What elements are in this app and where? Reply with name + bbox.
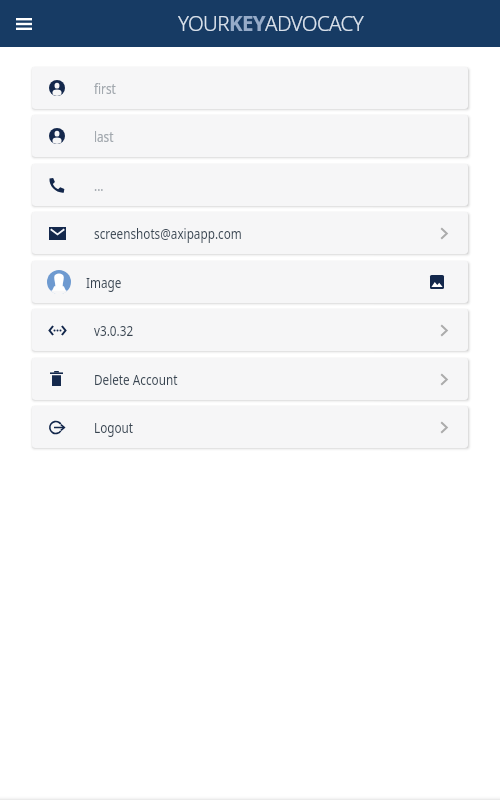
staticText: Image [86,272,122,292]
button[interactable]: Image [32,261,468,303]
staticText: Logout [94,417,134,437]
staticText: ... [94,175,104,195]
button[interactable]: Open navigation menu [8,8,40,40]
button[interactable]: v3.0.32 [32,309,468,351]
button[interactable]: ... [32,164,468,206]
staticText: YOURKEYADVOCACY [178,9,364,37]
button[interactable]: Delete Account [32,358,468,400]
button[interactable]: first [32,67,468,109]
staticText: last [94,126,114,146]
staticText: Delete Account [94,369,177,389]
button[interactable]: last [32,115,468,157]
button[interactable]: screenshots@axipapp.com [32,212,468,254]
staticText: v3.0.32 [94,320,134,340]
staticText: first [94,78,116,98]
button[interactable]: Choose image [430,275,444,289]
staticText: screenshots@axipapp.com [94,223,242,243]
button[interactable]: Logout [32,406,468,448]
